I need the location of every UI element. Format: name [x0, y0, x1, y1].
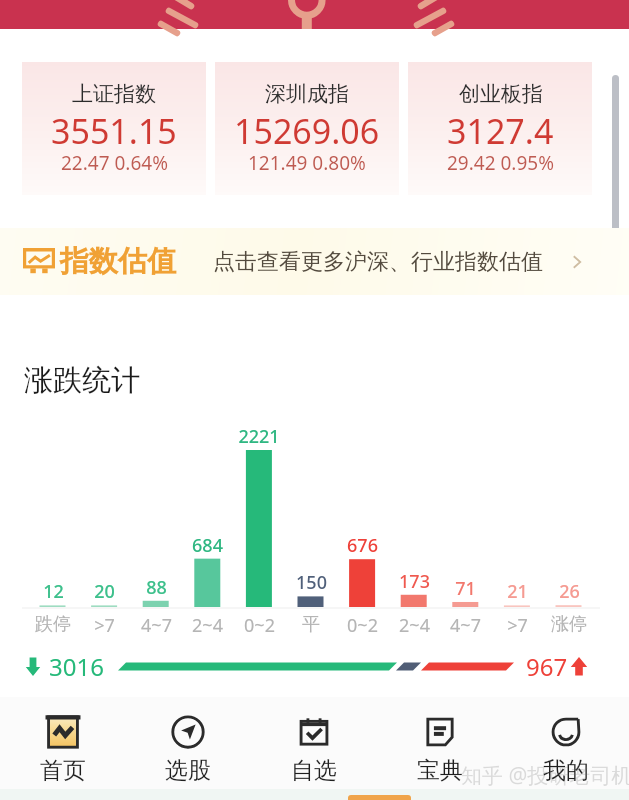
staticText: 150 [296, 570, 327, 595]
staticText: 3016 [49, 650, 104, 683]
staticText: 选股 [165, 756, 211, 785]
staticText: 676 [347, 533, 378, 558]
staticText: >7 [507, 613, 528, 638]
staticText: >7 [94, 613, 115, 638]
staticText: 2221 [238, 424, 280, 449]
staticText: 21 [507, 579, 528, 604]
staticText: 4~7 [141, 613, 172, 638]
staticText: 深圳成指 [265, 81, 349, 107]
button[interactable]: 首页 [0, 697, 125, 785]
button[interactable]: 选股 [125, 697, 251, 785]
staticText: 我的 [543, 756, 589, 785]
staticText: 121.49 0.80% [248, 150, 366, 176]
staticText: 3551.15 [51, 108, 177, 154]
other: 我的 [547, 713, 585, 751]
staticText: 684 [192, 533, 223, 558]
staticText: 涨跌统计 [24, 362, 140, 399]
staticText: 20 [94, 579, 115, 604]
staticText: 自选 [291, 756, 337, 785]
other: 宝典 [421, 713, 459, 751]
staticText: 涨停 [551, 613, 587, 636]
staticText: 3127.4 [447, 108, 554, 154]
staticText: 967 [526, 650, 568, 683]
staticText: 0~2 [244, 613, 275, 638]
staticText: 平 [302, 613, 320, 636]
button[interactable]: 我的 [503, 697, 629, 785]
staticText: 0~2 [347, 613, 378, 638]
staticText: 宝典 [417, 756, 463, 785]
staticText: 跌停 [35, 613, 71, 636]
staticText: 创业板指 [459, 81, 543, 107]
staticText: 22.47 0.64% [61, 150, 168, 176]
staticText: 上证指数 [72, 81, 156, 107]
staticText: 12 [43, 579, 64, 604]
button[interactable]: 上证指数 [22, 62, 206, 195]
other: 首页 [44, 713, 82, 751]
staticText: 知乎 @投研老司机 [461, 761, 629, 790]
button[interactable]: 深圳成指 [215, 62, 399, 195]
other: 自选 [295, 713, 333, 751]
staticText: 4~7 [450, 613, 481, 638]
staticText: 2~4 [192, 613, 223, 638]
staticText: 173 [399, 569, 430, 594]
staticText: 29.42 0.95% [447, 150, 554, 176]
button[interactable]: 自选 [251, 697, 377, 785]
other: 选股 [169, 713, 207, 751]
staticText: 首页 [40, 756, 86, 785]
staticText: 点击查看更多沪深、行业指数估值 [213, 248, 543, 276]
button[interactable]: 指数估值 [0, 228, 629, 295]
staticText: 2~4 [399, 613, 430, 638]
staticText: 15269.06 [234, 108, 380, 154]
staticText: 71 [455, 576, 476, 601]
button[interactable]: 创业板指 [408, 62, 592, 195]
staticText: 88 [146, 575, 167, 600]
button[interactable]: 宝典 [377, 697, 503, 785]
staticText: 指数估值 [60, 243, 176, 280]
staticText: 26 [559, 579, 580, 604]
